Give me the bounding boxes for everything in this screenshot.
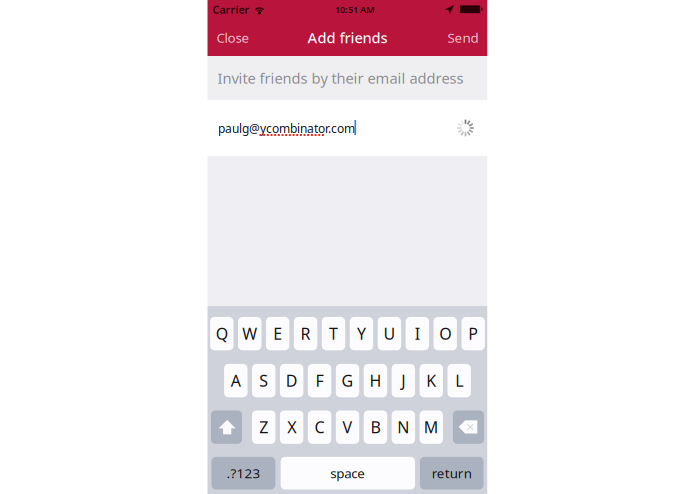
staticText: N — [397, 416, 409, 438]
button[interactable]: Shift — [211, 410, 242, 444]
button[interactable]: E — [266, 317, 289, 350]
staticText: V — [342, 416, 352, 438]
button[interactable]: P — [461, 317, 485, 350]
staticText: E — [273, 323, 282, 344]
staticText: P — [468, 323, 478, 344]
staticText: Invite friends by their email address — [217, 68, 463, 88]
staticText: C — [315, 416, 325, 438]
staticText: O — [439, 323, 451, 344]
button[interactable]: Y — [350, 317, 373, 350]
staticText: return — [432, 464, 472, 482]
staticText: L — [455, 370, 463, 391]
staticText: space — [330, 464, 365, 482]
button[interactable]: return — [420, 457, 484, 490]
button[interactable]: H — [364, 364, 387, 397]
button[interactable]: Z — [252, 410, 275, 444]
button[interactable]: I — [406, 317, 429, 350]
staticText: X — [287, 416, 296, 438]
staticText: G — [341, 370, 353, 391]
staticText: Send — [447, 29, 478, 46]
staticText: S — [259, 370, 268, 391]
button[interactable]: W — [238, 317, 261, 350]
staticText: Y — [357, 323, 366, 344]
button[interactable]: Close — [207, 19, 258, 56]
button[interactable]: Q — [210, 317, 233, 350]
staticText: Q — [216, 323, 228, 344]
button[interactable]: T — [322, 317, 345, 350]
staticText: F — [316, 370, 324, 391]
staticText: K — [426, 370, 436, 391]
button[interactable]: V — [336, 410, 359, 444]
button[interactable]: K — [420, 364, 443, 397]
button[interactable]: L — [447, 364, 471, 397]
button[interactable]: A — [224, 364, 247, 397]
button[interactable]: .?123 — [211, 457, 275, 490]
button[interactable]: B — [364, 410, 387, 444]
staticText: W — [242, 323, 257, 344]
button[interactable]: F — [308, 364, 331, 397]
staticText: Close — [216, 29, 249, 46]
button[interactable]: R — [294, 317, 317, 350]
button[interactable]: J — [392, 364, 415, 397]
button[interactable]: S — [252, 364, 275, 397]
button[interactable]: X — [280, 410, 303, 444]
staticText: I — [415, 323, 420, 344]
button[interactable]: O — [434, 317, 457, 350]
button[interactable]: G — [336, 364, 359, 397]
button[interactable]: space — [281, 457, 415, 490]
button[interactable]: N — [392, 410, 415, 444]
button[interactable]: Delete — [453, 410, 484, 444]
staticText: M — [424, 416, 439, 438]
button[interactable]: M — [420, 410, 443, 444]
button[interactable]: U — [378, 317, 401, 350]
staticText: A — [231, 370, 241, 391]
staticText: .?123 — [226, 464, 260, 482]
staticText: R — [301, 323, 311, 344]
staticText: T — [329, 323, 338, 344]
staticText: B — [370, 416, 380, 438]
staticText: D — [286, 370, 298, 391]
staticText: U — [383, 323, 395, 344]
staticText: Carrier — [212, 2, 249, 17]
button[interactable]: C — [308, 410, 331, 444]
staticText: paulg@ycombinator.com — [218, 120, 355, 136]
staticText: 10:51 AM — [335, 3, 375, 16]
staticText: J — [401, 370, 405, 391]
button[interactable]: D — [280, 364, 303, 397]
staticText: H — [369, 370, 381, 391]
staticText: Z — [259, 416, 268, 438]
staticText: Add friends — [307, 28, 387, 47]
button[interactable]: Send — [438, 19, 487, 56]
